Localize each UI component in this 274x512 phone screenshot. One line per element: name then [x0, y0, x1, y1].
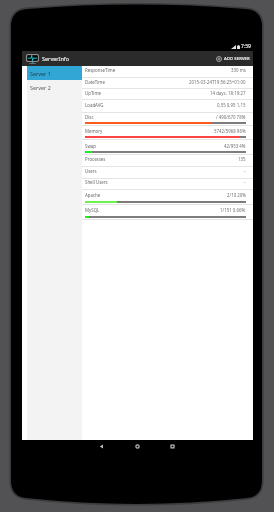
- button[interactable]: Shell Users: [82, 178, 253, 190]
- button[interactable]: ADD SERVER: [214, 51, 252, 66]
- staticText: ADD SERVER: [224, 56, 250, 62]
- button[interactable]: LoadAVG: [82, 101, 253, 113]
- staticText: 14 days, 18:19:27: [210, 90, 246, 96]
- staticText: UpTime: [85, 90, 102, 96]
- button[interactable]: UpTime: [82, 89, 253, 100]
- staticText: / 490/670 78%: [216, 114, 246, 120]
- staticText: 330 ms: [231, 67, 246, 73]
- button[interactable]: Apache: [82, 190, 253, 205]
- button[interactable]: Memory: [82, 126, 253, 140]
- staticText: MySQL: [85, 207, 100, 213]
- staticText: 135: [238, 156, 246, 162]
- staticText: LoadAVG: [85, 102, 104, 108]
- button[interactable]: Disc: [82, 112, 253, 126]
- staticText: ServerInfo: [42, 55, 70, 62]
- staticText: 2/10 20%: [227, 192, 246, 198]
- button[interactable]: Recent apps: [165, 440, 179, 454]
- button[interactable]: Home: [130, 440, 144, 454]
- button[interactable]: Processes: [82, 155, 253, 167]
- staticText: Server 2: [30, 84, 51, 91]
- button[interactable]: Swap: [82, 141, 253, 155]
- staticText: -: [244, 179, 246, 185]
- staticText: Processes: [85, 156, 106, 162]
- button[interactable]: Server 1: [27, 66, 82, 80]
- staticText: Shell Users: [85, 179, 108, 185]
- staticText: Swap: [85, 143, 97, 149]
- staticText: 0,55 0,95 1,15: [217, 102, 246, 108]
- staticText: 1/151 0.66%: [220, 207, 246, 213]
- button[interactable]: Server 2: [27, 80, 82, 94]
- staticText: 2015-03-24T19:56:25+01:00: [189, 79, 246, 85]
- staticText: Server 1: [30, 70, 51, 77]
- staticText: 5742/5968 96%: [214, 128, 246, 134]
- staticText: 7:59: [241, 43, 251, 50]
- staticText: 42/953 4%: [224, 143, 246, 149]
- staticText: Users: [85, 168, 97, 174]
- staticText: -: [244, 168, 246, 174]
- button[interactable]: DateTime: [82, 78, 253, 89]
- button[interactable]: Users: [82, 167, 253, 179]
- staticText: Apache: [85, 192, 101, 198]
- button[interactable]: ResponseTime: [82, 66, 253, 78]
- staticText: ResponseTime: [85, 67, 116, 73]
- button[interactable]: MySQL: [82, 205, 253, 220]
- staticText: DateTime: [85, 79, 105, 85]
- staticText: Memory: [85, 128, 103, 134]
- button[interactable]: Back: [94, 440, 108, 454]
- staticText: Disc: [85, 114, 94, 120]
